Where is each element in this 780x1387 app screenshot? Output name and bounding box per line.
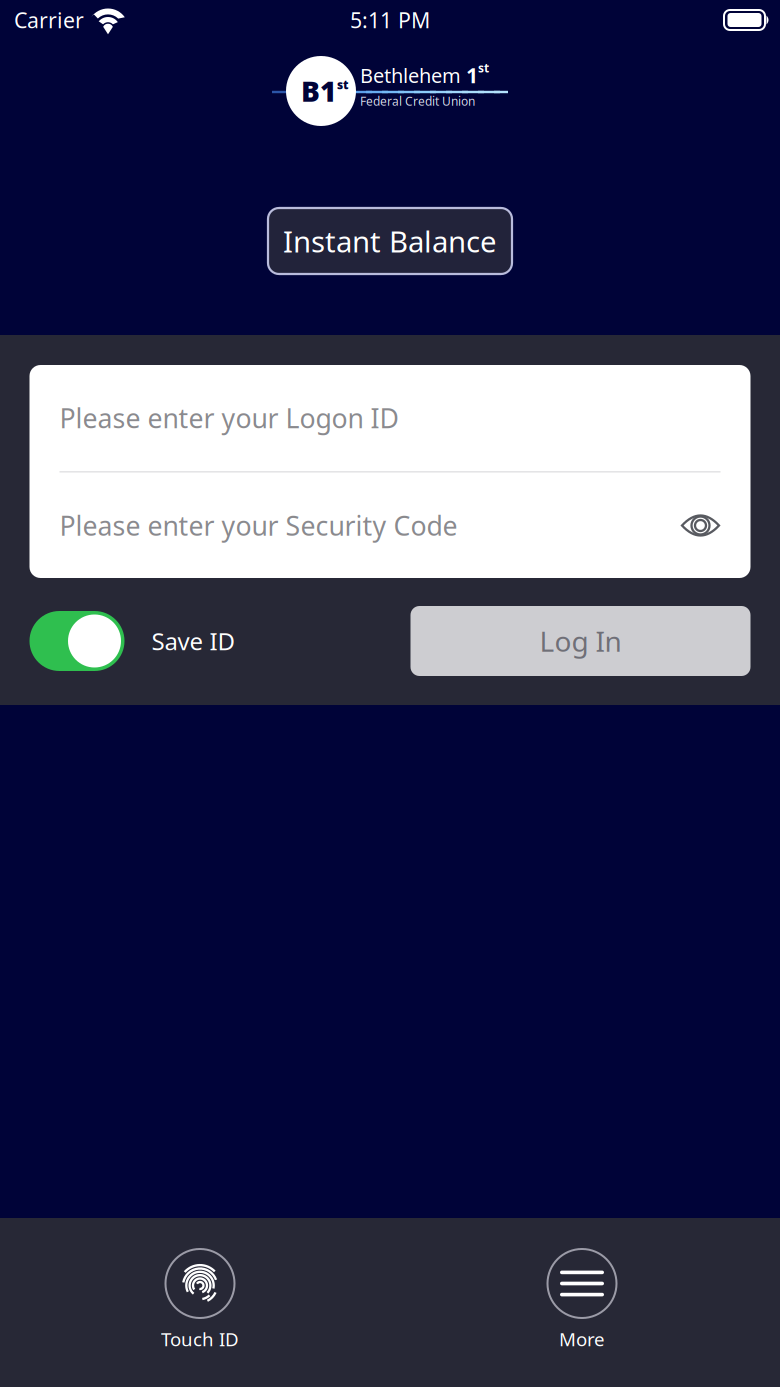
- staticText: 1: [466, 61, 478, 89]
- button[interactable]: More: [492, 1218, 672, 1387]
- staticText: st: [337, 76, 349, 92]
- staticText: st: [478, 60, 489, 76]
- button[interactable]: Touch ID: [110, 1218, 290, 1387]
- staticText: Federal Credit Union: [360, 93, 475, 109]
- staticText: Log In: [539, 622, 621, 660]
- staticText: More: [559, 1327, 605, 1351]
- button[interactable]: Show security code: [680, 511, 720, 540]
- staticText: Touch ID: [161, 1327, 239, 1351]
- staticText: Please enter your Logon ID: [59, 400, 398, 436]
- button[interactable]: Instant Balance: [268, 208, 512, 274]
- staticText: B1: [301, 72, 336, 110]
- staticText: 5:11 PM: [350, 6, 430, 34]
- staticText: Bethlehem: [360, 62, 466, 88]
- staticText: Please enter your Security Code: [59, 508, 457, 543]
- button[interactable]: Save ID: [29, 606, 289, 676]
- button[interactable]: Log In: [410, 606, 750, 676]
- staticText: Instant Balance: [283, 221, 497, 260]
- staticText: Carrier: [14, 6, 84, 34]
- staticText: Save ID: [151, 625, 235, 657]
